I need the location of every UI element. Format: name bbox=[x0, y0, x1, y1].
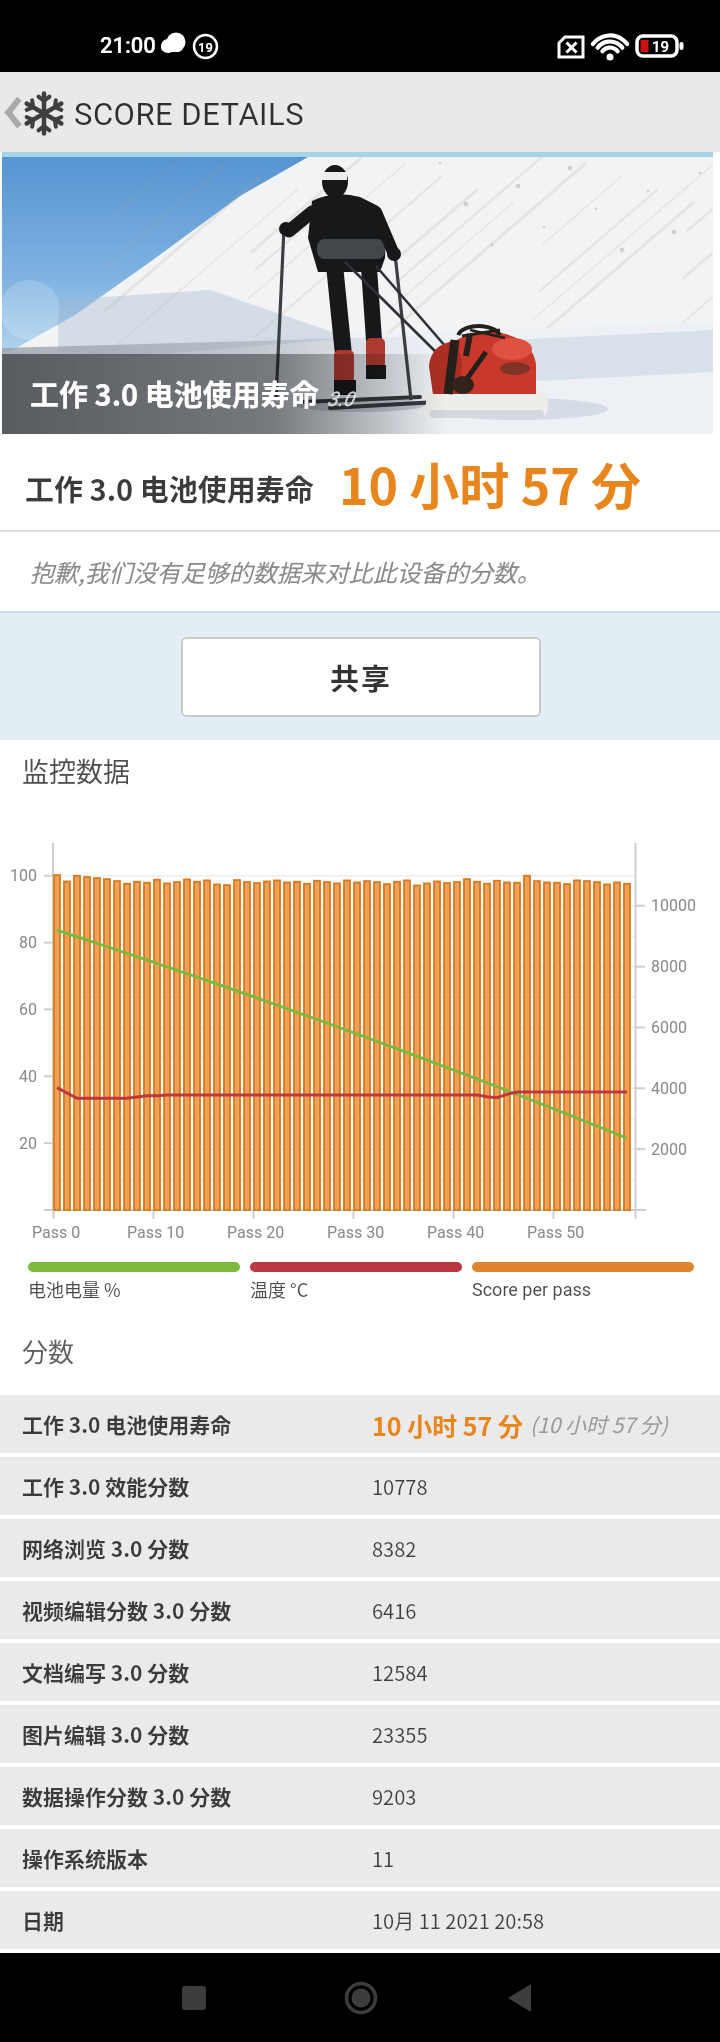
staticText: 图片编辑 3.0 分数 bbox=[22, 1719, 190, 1749]
staticText: Pass 40 bbox=[427, 1223, 485, 1242]
staticText: 19 bbox=[652, 38, 670, 56]
staticText: 数据操作分数 3.0 分数 bbox=[22, 1781, 232, 1811]
staticText: 操作系统版本 bbox=[22, 1843, 148, 1873]
staticText: 监控数据 bbox=[22, 751, 130, 790]
staticText: 80 bbox=[19, 933, 37, 952]
staticText: Pass 50 bbox=[527, 1223, 585, 1242]
staticText: 视频编辑分数 3.0 分数 bbox=[22, 1595, 232, 1625]
staticText: 6416 bbox=[372, 1596, 417, 1625]
button[interactable] bbox=[329, 1966, 393, 2030]
staticText: 2000 bbox=[651, 1140, 687, 1159]
staticText: 网络浏览 3.0 分数 bbox=[22, 1533, 190, 1563]
staticText: 21:00 bbox=[100, 33, 156, 59]
staticText: 分数 bbox=[22, 1332, 75, 1370]
staticText: (10 小时 57 分) bbox=[530, 1409, 668, 1439]
staticText: 工作 3.0 电池使用寿命 bbox=[22, 1409, 232, 1439]
staticText: 抱歉,我们没有足够的数据来对比此设备的分数。 bbox=[30, 554, 541, 589]
staticText: 温度 °C bbox=[250, 1276, 309, 1302]
staticText: 日期 bbox=[22, 1905, 64, 1935]
staticText: 19 bbox=[198, 40, 213, 55]
staticText: 10778 bbox=[372, 1472, 428, 1501]
staticText: 工作 3.0 效能分数 bbox=[22, 1471, 190, 1501]
staticText: 12584 bbox=[372, 1658, 428, 1687]
staticText: 工作 3.0 电池使用寿命 bbox=[25, 467, 314, 509]
staticText: 4000 bbox=[651, 1079, 687, 1098]
staticText: 3.0 bbox=[327, 387, 354, 410]
staticText: SCORE DETAILS bbox=[74, 96, 305, 132]
staticText: 40 bbox=[19, 1067, 37, 1086]
staticText: Pass 0 bbox=[32, 1223, 81, 1242]
staticText: 文档编写 3.0 分数 bbox=[22, 1657, 190, 1687]
staticText: 工作 3.0 电池使用寿命 bbox=[30, 372, 319, 414]
staticText: 6000 bbox=[651, 1018, 687, 1037]
staticText: 电池电量 % bbox=[28, 1276, 121, 1302]
staticText: 23355 bbox=[372, 1720, 428, 1749]
button[interactable] bbox=[0, 72, 330, 152]
staticText: 9203 bbox=[372, 1782, 417, 1811]
staticText: 10000 bbox=[651, 896, 696, 915]
staticText: Pass 20 bbox=[227, 1223, 285, 1242]
button[interactable]: 共享 bbox=[181, 637, 541, 717]
staticText: 8000 bbox=[651, 957, 687, 976]
button[interactable] bbox=[488, 1966, 552, 2030]
staticText: Score per pass bbox=[472, 1279, 592, 1300]
staticText: 10 小时 57 分 bbox=[339, 447, 642, 519]
staticText: 60 bbox=[19, 1000, 37, 1019]
staticText: 共享 bbox=[330, 656, 393, 698]
staticText: 10月 11 2021 20:58 bbox=[372, 1906, 545, 1935]
staticText: 100 bbox=[10, 866, 37, 885]
staticText: Pass 10 bbox=[127, 1223, 185, 1242]
staticText: Pass 30 bbox=[327, 1223, 385, 1242]
staticText: 20 bbox=[19, 1134, 37, 1153]
staticText: 10 小时 57 分 bbox=[372, 1407, 524, 1443]
button[interactable] bbox=[160, 1966, 224, 2030]
staticText: 11 bbox=[372, 1844, 395, 1873]
staticText: 8382 bbox=[372, 1534, 417, 1563]
